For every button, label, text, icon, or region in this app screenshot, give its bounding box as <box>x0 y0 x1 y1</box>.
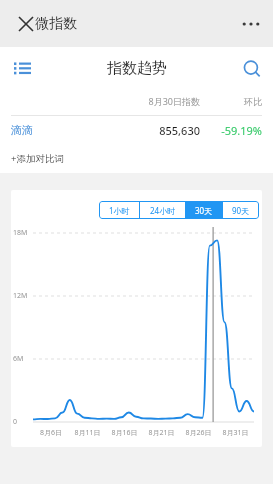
button[interactable]: 24小时 <box>140 201 185 219</box>
staticText: 12M <box>13 291 28 301</box>
staticText: 90天 <box>232 205 250 216</box>
staticText: 8月6日 <box>33 428 69 438</box>
staticText: 30天 <box>195 205 213 216</box>
button[interactable]: 90天 <box>223 201 259 219</box>
staticText: 855,630 <box>108 123 200 138</box>
button[interactable]: List <box>5 52 39 86</box>
staticText: 8月26日 <box>180 428 217 438</box>
staticText: 0 <box>13 417 18 427</box>
staticText: 1小时 <box>109 205 130 216</box>
staticText: 微指数 <box>35 15 77 33</box>
button[interactable]: 滴滴 <box>0 116 273 144</box>
staticText: +添加对比词 <box>11 152 64 165</box>
staticText: 指数趋势 <box>107 59 167 78</box>
button[interactable]: Close <box>9 7 43 41</box>
button[interactable]: 1小时 <box>99 201 139 219</box>
staticText: 24小时 <box>150 205 176 216</box>
staticText: 18M <box>13 228 28 238</box>
button[interactable]: More options <box>234 7 268 41</box>
button[interactable]: 30天 <box>186 201 222 219</box>
staticText: 6M <box>13 354 24 364</box>
staticText: 8月31日 <box>217 428 254 438</box>
staticText: 8月30日指数 <box>108 95 200 107</box>
staticText: 8月16日 <box>106 428 143 438</box>
staticText: 8月11日 <box>69 428 106 438</box>
staticText: -59.19% <box>200 123 262 138</box>
button[interactable]: +添加对比词 <box>0 144 273 167</box>
staticText: 8月21日 <box>143 428 180 438</box>
staticText: 环比 <box>200 96 262 107</box>
button[interactable]: Search <box>235 52 269 86</box>
staticText: 滴滴 <box>11 123 33 137</box>
